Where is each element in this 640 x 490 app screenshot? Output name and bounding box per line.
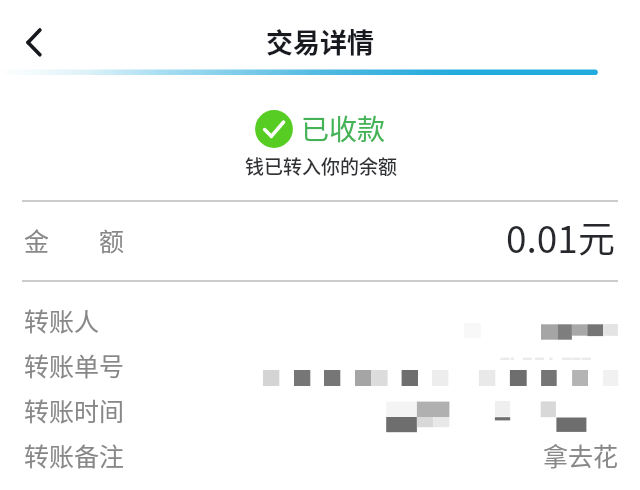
button[interactable]: 转账人 [0,296,640,341]
button[interactable]: 转账时间 [0,386,640,431]
staticText: 交易详情 [266,22,374,61]
staticText: 拿去花 [543,437,619,473]
staticText: 转账人 [24,302,100,338]
staticText: 已收款 [301,108,386,149]
staticText: 金 额 [24,222,125,258]
staticText: 转账备注 [24,437,125,473]
staticText: 钱已转入你的余额 [245,152,398,180]
staticText: 0.01元 [506,210,615,264]
button[interactable]: 转账单号 [0,341,640,386]
button[interactable]: Back [2,16,54,68]
button[interactable]: 金 额 [0,202,640,280]
staticText: 转账时间 [24,392,125,428]
button[interactable]: 转账备注 [0,431,640,476]
staticText: 转账单号 [24,347,125,383]
